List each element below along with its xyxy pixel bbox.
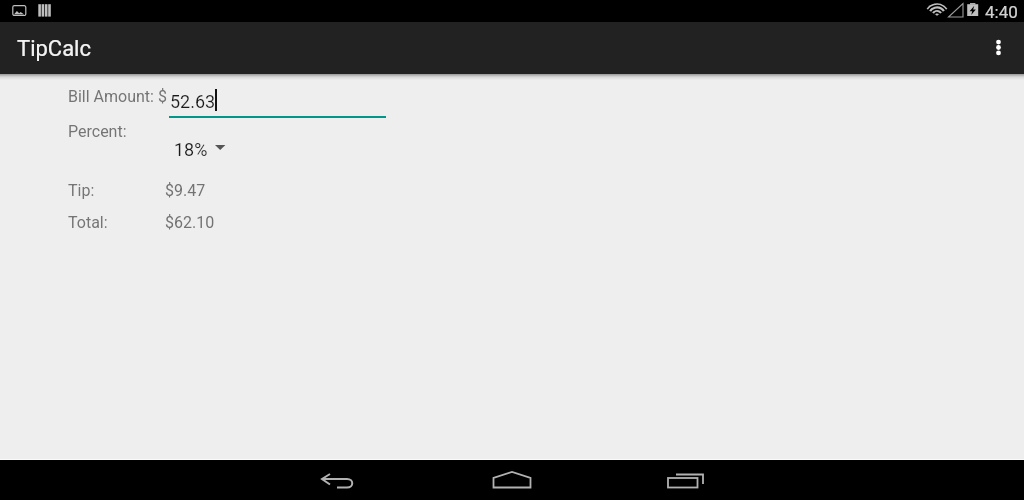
staticText: $9.47 [165, 181, 206, 200]
button[interactable]: Back [299, 460, 379, 500]
button[interactable]: Recent apps [643, 460, 723, 500]
staticText: 4:40 [985, 2, 1018, 22]
staticText: Tip: [68, 181, 95, 200]
staticText: Percent: [68, 122, 127, 141]
staticText: Bill Amount: $ [68, 87, 167, 106]
button[interactable]: 18% [174, 138, 226, 160]
staticText: Total: [68, 213, 108, 232]
button[interactable]: More options [982, 22, 1024, 74]
staticText: $62.10 [165, 213, 215, 232]
staticText: 52.63 [170, 91, 216, 112]
button[interactable]: Home [472, 460, 552, 500]
button[interactable]: 52.63 [169, 86, 386, 118]
staticText: 18% [174, 139, 208, 160]
staticText: TipCalc [17, 36, 91, 62]
